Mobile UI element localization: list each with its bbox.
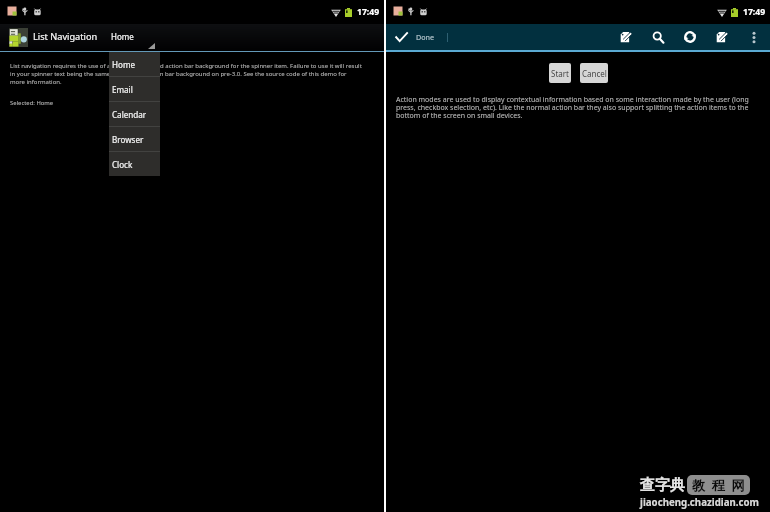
button[interactable]: Clock — [109, 152, 160, 176]
staticText: Calendar — [112, 109, 147, 120]
staticText: Selected: Home — [10, 99, 54, 107]
staticText: 教 程 网 — [692, 476, 745, 494]
staticText: List navigation requires the use of a th… — [10, 62, 363, 86]
staticText: List Navigation — [33, 30, 98, 43]
button[interactable]: Edit — [706, 24, 738, 50]
button[interactable]: Refresh — [674, 24, 706, 50]
staticText: Browser — [112, 134, 144, 145]
button[interactable]: Calendar — [109, 102, 160, 126]
button[interactable]: Home — [109, 24, 159, 51]
staticText: Start — [551, 68, 569, 79]
staticText: 查字典 — [640, 476, 685, 495]
button[interactable]: Search — [642, 24, 674, 50]
staticText: 17:49 — [357, 6, 380, 18]
staticText: Home — [112, 59, 136, 70]
staticText: Email — [112, 84, 133, 95]
button[interactable]: Email — [109, 77, 160, 101]
staticText: Home — [111, 31, 134, 42]
staticText: Action modes are used to display context… — [396, 95, 759, 120]
staticText: Cancel — [582, 68, 607, 79]
staticText: Done — [416, 32, 435, 42]
button[interactable]: Home — [109, 52, 160, 76]
button[interactable]: Done — [386, 24, 447, 50]
staticText: 17:49 — [743, 6, 766, 18]
staticText: Clock — [112, 159, 133, 170]
button[interactable]: Compose — [610, 24, 642, 50]
staticText: jiaocheng.chazidian.com — [640, 496, 759, 509]
button[interactable]: Cancel — [580, 63, 608, 83]
button[interactable]: Browser — [109, 127, 160, 151]
button[interactable]: More options — [738, 24, 770, 50]
button[interactable]: Start — [549, 63, 571, 83]
